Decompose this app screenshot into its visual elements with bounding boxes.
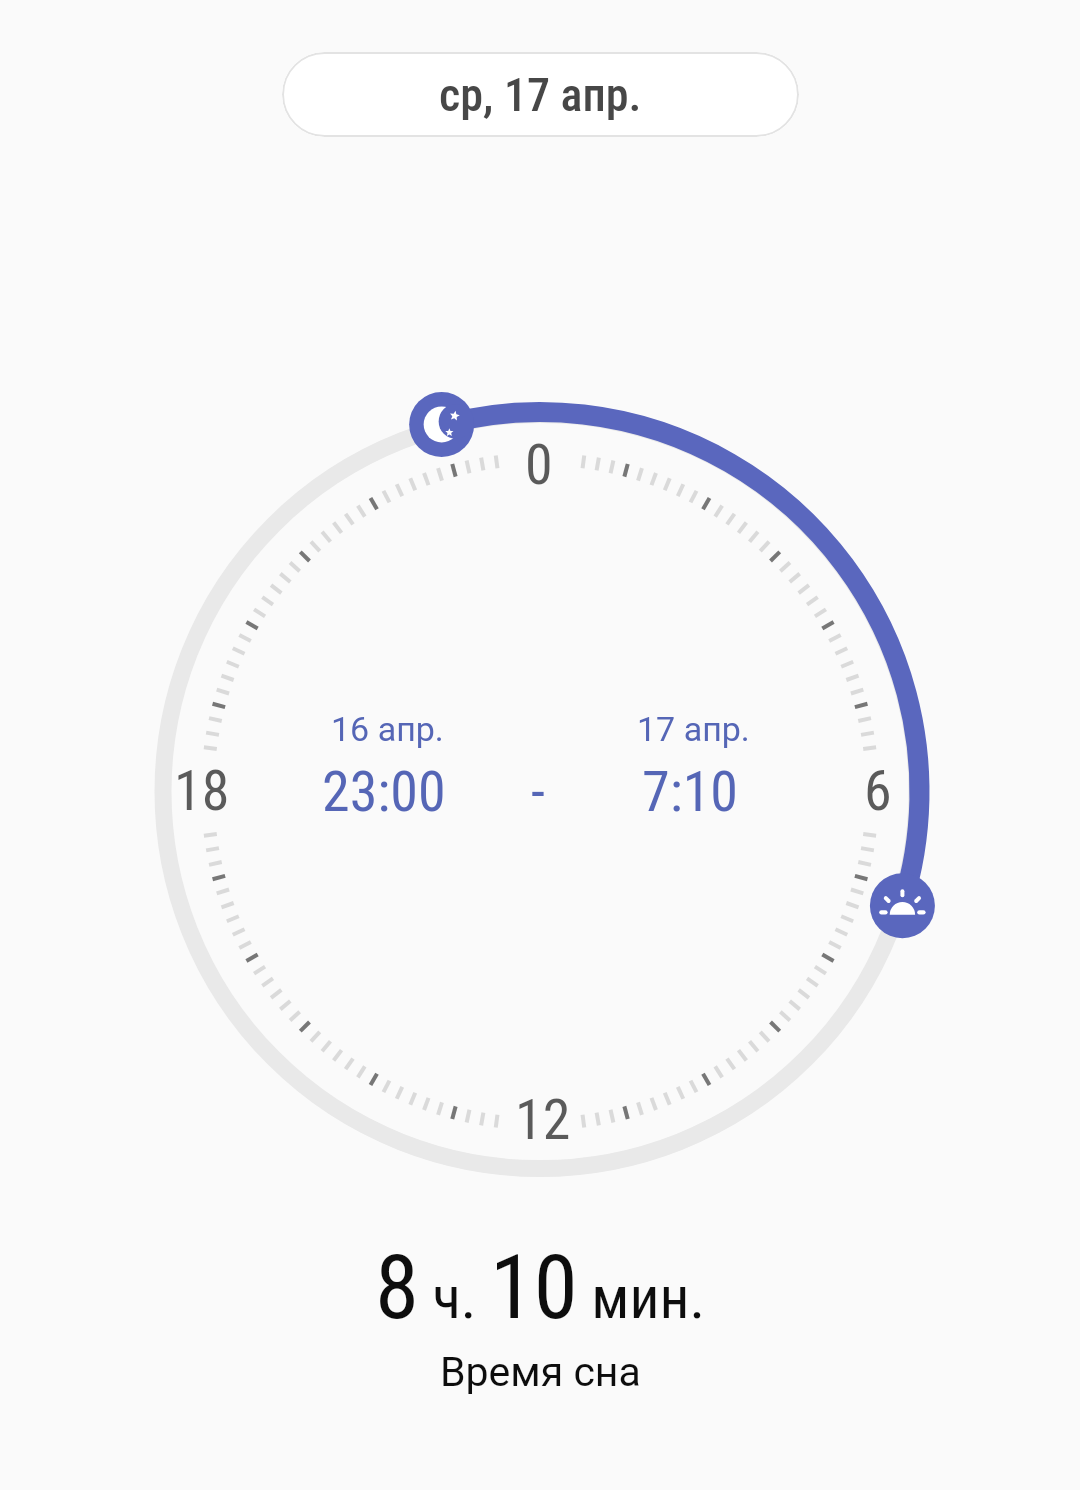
staticText: 18 (174, 758, 230, 824)
staticText: 23:00 (322, 759, 446, 825)
staticText: 0 (525, 432, 553, 498)
button[interactable]: ср, 17 апр. (282, 52, 799, 137)
staticText: 6 (864, 758, 892, 824)
staticText: 17 апр. (637, 709, 750, 749)
staticText: 8 ч. 10 мин. (375, 1235, 706, 1339)
staticText: 16 апр. (331, 709, 444, 749)
staticText: Время сна (440, 1348, 641, 1396)
staticText: 7:10 (642, 759, 739, 825)
staticText: 12 (515, 1087, 571, 1153)
staticText: ср, 17 апр. (439, 68, 642, 122)
staticText: - (531, 759, 545, 825)
